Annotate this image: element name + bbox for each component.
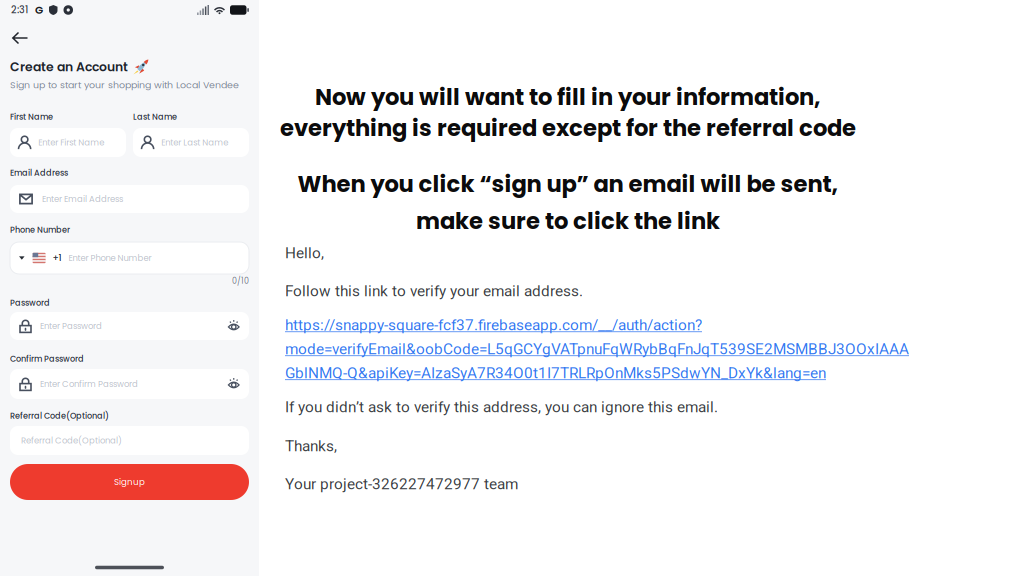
staticText: everything is required except for the re… — [280, 112, 856, 144]
staticText: Last Name — [133, 111, 177, 123]
button[interactable]: Enter Password — [10, 312, 249, 340]
button[interactable]: Enter Confirm Password — [10, 369, 249, 399]
staticText: +1 — [53, 252, 62, 264]
button[interactable]: Enter Email Address — [10, 185, 249, 213]
staticText: make sure to click the link — [416, 205, 720, 237]
button[interactable]: +1 — [10, 242, 249, 274]
staticText: Create an Account — [10, 58, 128, 76]
button[interactable]: Signup — [10, 464, 249, 500]
staticText: https://snappy-square-fcf37.firebaseapp.… — [285, 316, 702, 334]
button[interactable]: Enter First Name — [10, 128, 126, 157]
staticText: Hello, — [285, 244, 324, 262]
button[interactable]: https://snappy-square-fcf37.firebaseapp.… — [285, 316, 925, 382]
button[interactable]: Enter Last Name — [133, 128, 249, 157]
staticText: When you click “sign up” an email will b… — [297, 168, 838, 200]
staticText: Password — [10, 297, 50, 309]
button[interactable]: Back — [0, 26, 60, 50]
staticText: Signup — [114, 476, 145, 488]
staticText: Enter Phone Number — [69, 252, 152, 264]
staticText: If you didn’t ask to verify this address… — [285, 398, 718, 416]
staticText: Email Address — [10, 167, 68, 179]
staticText: 0/10 — [232, 275, 249, 286]
staticText: Referral Code(Optional) — [10, 410, 109, 422]
staticText: Referral Code(Optional) — [21, 435, 122, 446]
staticText: Enter Last Name — [161, 137, 228, 148]
staticText: 2:31 — [11, 3, 28, 17]
staticText: Enter Confirm Password — [40, 378, 138, 390]
staticText: First Name — [10, 111, 53, 123]
staticText: Now you will want to fill in your inform… — [315, 81, 821, 113]
staticText: Enter Password — [40, 320, 102, 332]
staticText: G — [35, 2, 43, 17]
staticText: Enter Email Address — [42, 193, 123, 205]
staticText: Thanks, — [285, 437, 337, 455]
staticText: Confirm Password — [10, 353, 84, 365]
staticText: Follow this link to verify your email ad… — [285, 282, 583, 300]
staticText: mode=verifyEmail&oobCode=L5qGCYgVATpnuFq… — [285, 340, 909, 358]
staticText: GblNMQ-Q&apiKey=AIzaSyA7R34O0t1I7TRLRpOn… — [285, 364, 826, 382]
staticText: Enter First Name — [38, 137, 104, 148]
button[interactable]: Referral Code(Optional) — [10, 426, 249, 455]
staticText: Your project-326227472977 team — [285, 475, 518, 493]
staticText: Phone Number — [10, 224, 70, 236]
staticText: Sign up to start your shopping with Loca… — [10, 78, 239, 92]
